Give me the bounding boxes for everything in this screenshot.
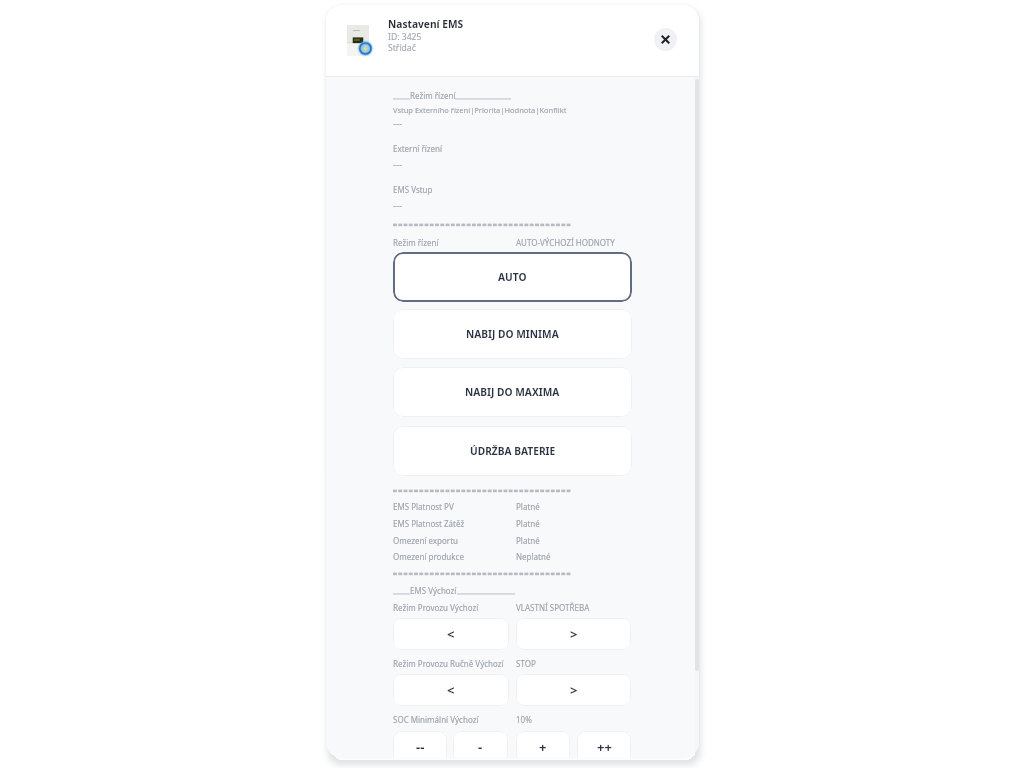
staticText: ---: [393, 199, 403, 212]
staticText: EMS Výchozí: [410, 585, 457, 596]
button[interactable]: NABIJ DO MAXIMA: [393, 367, 632, 417]
staticText: Platné: [516, 518, 540, 529]
staticText: EMS Platnost PV: [393, 501, 454, 512]
staticText: Platné: [516, 501, 540, 512]
staticText: <: [447, 681, 455, 699]
staticText: AUTO-VÝCHOZÍ HODNOTY: [516, 237, 615, 248]
staticText: Vstup Externího řízení|Priorita|Hodnota|…: [393, 105, 567, 115]
staticText: Platné: [516, 535, 540, 546]
staticText: STOP: [516, 658, 536, 669]
staticText: Nastavení EMS: [388, 17, 464, 31]
button[interactable]: AUTO: [393, 252, 632, 302]
button[interactable]: ÚDRŽBA BATERIE: [393, 426, 632, 476]
staticText: <: [447, 625, 455, 643]
staticText: Střídač: [388, 42, 416, 54]
staticText: ---: [393, 158, 403, 171]
staticText: Omezení produkce: [393, 551, 464, 562]
button[interactable]: NABIJ DO MINIMA: [393, 309, 632, 359]
staticText: --: [416, 738, 425, 756]
staticText: Režim řízení: [410, 90, 456, 101]
button[interactable]: Close: [654, 28, 677, 51]
staticText: NABIJ DO MINIMA: [466, 327, 559, 341]
staticText: +: [539, 738, 547, 756]
staticText: >: [570, 625, 578, 643]
button[interactable]: Zvýšit SOC o 10: [577, 731, 631, 758]
staticText: ÚDRŽBA BATERIE: [470, 444, 556, 458]
button[interactable]: Předchozí režim provozu: [393, 618, 509, 650]
button[interactable]: Zvýšit SOC o 1: [516, 731, 570, 758]
staticText: Neplatné: [516, 551, 551, 562]
staticText: Režim Provozu Ručně Výchozí: [393, 658, 504, 669]
staticText: Omezení exportu: [393, 535, 458, 546]
button[interactable]: Snížit SOC o 10: [393, 731, 447, 758]
button[interactable]: Další režim provozu: [516, 618, 631, 650]
button[interactable]: Předchozí ruční režim: [393, 674, 509, 706]
staticText: Režim Provozu Výchozí: [393, 602, 479, 613]
staticText: Externí řízení: [393, 143, 443, 154]
staticText: ID: 3425: [388, 31, 422, 43]
button[interactable]: Další ruční režim: [516, 674, 631, 706]
staticText: VLASTNÍ SPOTŘEBA: [516, 602, 590, 613]
staticText: SOC Minimální Výchozí: [393, 714, 479, 725]
staticText: EMS Vstup: [393, 184, 433, 195]
staticText: Režim řízení: [393, 237, 439, 248]
staticText: >: [570, 681, 578, 699]
staticText: 10%: [516, 714, 532, 725]
staticText: ++: [597, 738, 612, 756]
staticText: NABIJ DO MAXIMA: [465, 385, 560, 399]
staticText: -: [478, 738, 483, 756]
staticText: AUTO: [498, 270, 527, 284]
button[interactable]: Snížit SOC o 1: [453, 731, 508, 758]
staticText: EMS Platnost Zátěž: [393, 518, 465, 529]
staticText: ---: [393, 117, 403, 130]
